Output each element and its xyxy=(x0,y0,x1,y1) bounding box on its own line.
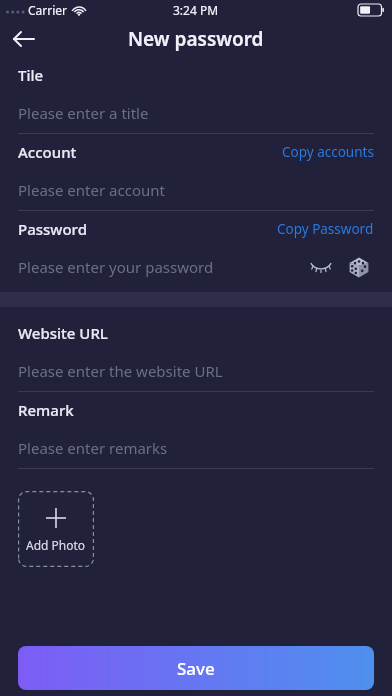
staticText: Carrier xyxy=(28,2,68,18)
staticText: Remark xyxy=(18,400,74,420)
staticText: Please enter your password xyxy=(18,257,214,277)
button[interactable]: Copy accounts xyxy=(282,143,374,161)
staticText: Please enter the website URL xyxy=(18,361,223,381)
staticText: Please enter remarks xyxy=(18,438,168,458)
staticText: Please enter account xyxy=(18,180,165,200)
staticText: Save xyxy=(177,657,215,680)
staticText: Tile xyxy=(18,65,44,85)
button[interactable]: Add Photo xyxy=(18,491,94,567)
staticText: Password xyxy=(18,219,87,239)
staticText: New password xyxy=(128,26,264,52)
button[interactable]: Password xyxy=(0,211,392,287)
staticText: Copy Password xyxy=(277,220,374,238)
staticText: Add Photo xyxy=(26,537,86,553)
button[interactable]: Show password xyxy=(306,252,336,282)
staticText: Please enter a title xyxy=(18,103,149,123)
button[interactable]: Copy Password xyxy=(277,220,374,238)
button[interactable]: Back xyxy=(0,20,48,57)
staticText: Website URL xyxy=(18,323,108,343)
staticText: 3:24 PM xyxy=(173,2,219,18)
staticText: Account xyxy=(18,142,77,162)
button[interactable]: Account xyxy=(0,134,392,211)
button[interactable]: Tile xyxy=(0,57,392,134)
button[interactable]: Remark xyxy=(0,392,392,469)
button[interactable]: Generate password xyxy=(344,252,374,282)
button[interactable]: Website URL xyxy=(0,315,392,392)
button[interactable]: Save xyxy=(18,646,374,690)
staticText: Copy accounts xyxy=(282,143,374,161)
